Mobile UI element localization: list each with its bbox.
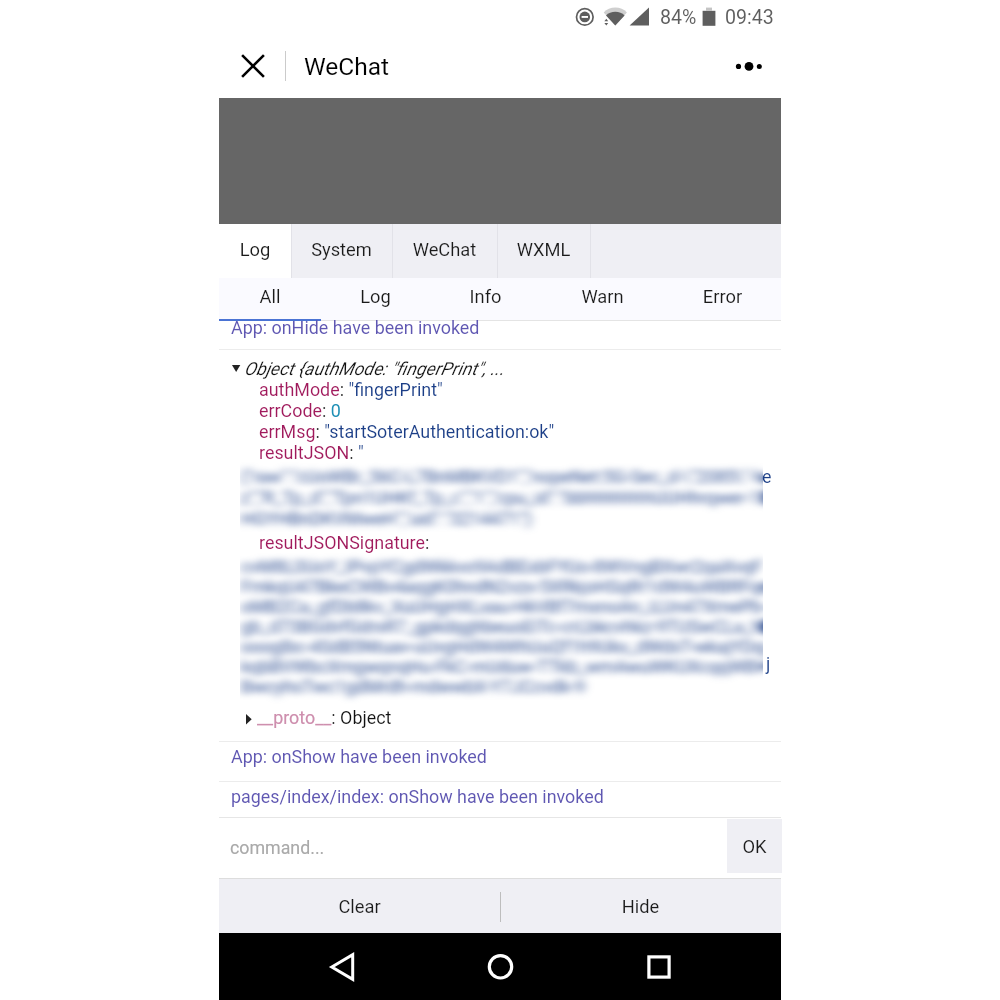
staticText: WeChat bbox=[392, 239, 497, 260]
staticText: z","R_Tp_d","Tpn1UHKf_Tp_c","1","cpu_id"… bbox=[241, 487, 763, 508]
button[interactable]: Home bbox=[478, 944, 523, 989]
staticText: Warn bbox=[541, 286, 664, 307]
staticText: 84% bbox=[660, 6, 697, 29]
button[interactable]: Object {authMode: "fingerPrint", ... bbox=[219, 350, 781, 742]
button[interactable]: Recents bbox=[637, 944, 682, 989]
staticText: All bbox=[219, 286, 321, 307]
button[interactable] bbox=[497, 224, 590, 278]
button[interactable]: More options bbox=[730, 44, 770, 90]
button[interactable]: Close bbox=[230, 43, 276, 89]
staticText: {"raw":"cUoWBr_56C-L7BnMBKVD1","nopeNet:… bbox=[241, 466, 763, 487]
button[interactable] bbox=[321, 278, 430, 321]
button[interactable] bbox=[664, 278, 781, 321]
staticText: oooglbc-4SdB5Ntuav-uUvgHdW4WhUuQf1h9Ukx_… bbox=[241, 636, 763, 657]
button[interactable]: App: onHide have been invoked bbox=[219, 321, 781, 349]
staticText: errCode: 0 bbox=[259, 400, 341, 421]
button[interactable] bbox=[291, 224, 392, 278]
staticText: BwcyhsTwc1gdMrdh-mdwwbX-Y7JCcvdk-9 bbox=[241, 676, 585, 697]
staticText: Log bbox=[219, 239, 291, 260]
staticText: WXML bbox=[497, 239, 590, 260]
staticText: e bbox=[762, 466, 772, 487]
button[interactable]: Back bbox=[320, 940, 370, 992]
button[interactable]: OK bbox=[727, 819, 782, 873]
staticText: __proto__: Object bbox=[257, 707, 392, 728]
button[interactable] bbox=[430, 278, 541, 321]
staticText: HGYHBnDKVMweH","uid":"3214471"} bbox=[241, 508, 532, 529]
staticText: resultJSONSignature: bbox=[259, 532, 434, 553]
button[interactable]: Hide bbox=[500, 878, 781, 933]
staticText: Hide bbox=[500, 896, 781, 917]
button[interactable]: pages/index/index: onShow have been invo… bbox=[219, 782, 781, 818]
staticText: Clear bbox=[219, 896, 500, 917]
staticText: Log bbox=[321, 286, 430, 307]
staticText: gb_d73BGdvfGdrxR7_gpkdqghbeuoEiTc-crLbkc… bbox=[241, 616, 763, 637]
staticText: errMsg: "startSoterAuthentication:ok" bbox=[259, 421, 555, 442]
button[interactable] bbox=[219, 224, 291, 278]
staticText: j bbox=[766, 653, 771, 674]
staticText: App: onShow have been invoked bbox=[231, 746, 487, 767]
staticText: OK bbox=[727, 836, 782, 857]
button[interactable]: command... bbox=[219, 819, 727, 879]
staticText: command... bbox=[230, 837, 325, 858]
staticText: kqbBVWbcXmgwqnqHu-FkC-mUduw-TTkb_wmAwuWK… bbox=[241, 656, 763, 677]
button[interactable]: Clear bbox=[219, 878, 500, 933]
staticText: oMB2Ca_gfDb8kv_XuUHgHXLxau-HkVBf7mxnoAn_… bbox=[241, 596, 763, 617]
staticText: 09:43 bbox=[725, 6, 774, 29]
staticText: System bbox=[291, 239, 392, 260]
staticText: Info bbox=[430, 286, 541, 307]
button[interactable]: App: onShow have been invoked bbox=[219, 742, 781, 781]
staticText: Error bbox=[664, 286, 781, 307]
staticText: pages/index/index: onShow have been invo… bbox=[231, 786, 604, 807]
button[interactable] bbox=[219, 278, 321, 321]
staticText: FmkqU47BkeCWBv4aqgK0hndN2vzx-5XRkjoHSqRr… bbox=[241, 576, 763, 597]
staticText: App: onHide have been invoked bbox=[231, 317, 480, 338]
button[interactable] bbox=[541, 278, 664, 321]
button[interactable] bbox=[392, 224, 497, 278]
staticText: Object {authMode: "fingerPrint", ... bbox=[244, 358, 505, 379]
staticText: WeChat bbox=[304, 52, 390, 81]
staticText: cvM8L0UoY_IPvpYCgdWkkvo9AdBExbFYUo-8WVng… bbox=[241, 556, 763, 577]
staticText: resultJSON: " bbox=[259, 442, 364, 463]
staticText: authMode: "fingerPrint" bbox=[259, 379, 443, 400]
